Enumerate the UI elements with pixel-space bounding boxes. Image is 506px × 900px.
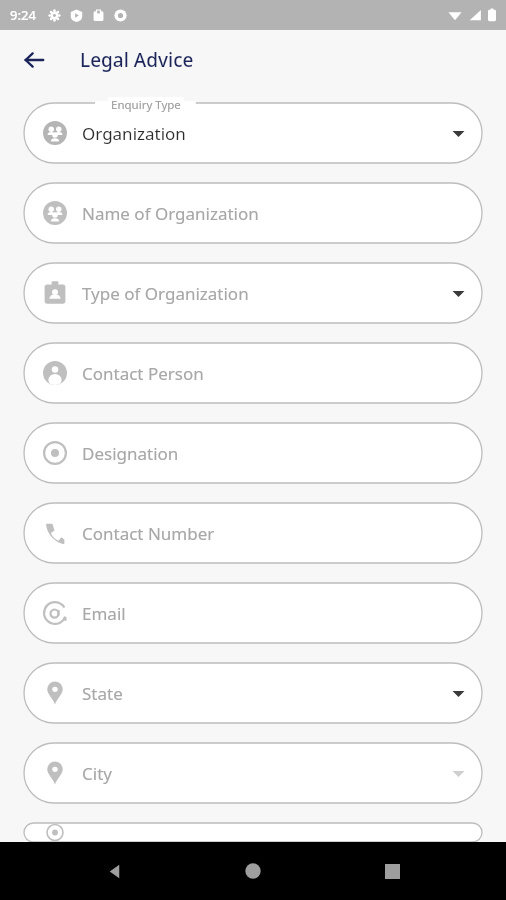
button[interactable]: Contact Person bbox=[24, 343, 482, 403]
button[interactable]: Organization bbox=[24, 103, 482, 163]
staticText: Enquiry Type bbox=[111, 97, 181, 113]
staticText: Name of Organization bbox=[82, 202, 259, 225]
staticText: Contact Person bbox=[82, 362, 204, 385]
button[interactable]: Back bbox=[12, 38, 56, 82]
button[interactable]: Name of Organization bbox=[24, 183, 482, 243]
staticText: Email bbox=[82, 602, 126, 625]
button[interactable]: Email bbox=[24, 583, 482, 643]
button[interactable]: Home bbox=[229, 847, 277, 895]
button[interactable]: Type of Organization bbox=[24, 263, 482, 323]
staticText: Designation bbox=[82, 442, 179, 465]
staticText: 9:24 bbox=[10, 6, 36, 24]
staticText: Type of Organization bbox=[82, 282, 249, 305]
staticText: City bbox=[82, 762, 112, 785]
staticText: Contact Number bbox=[82, 522, 215, 545]
button[interactable]: Recent apps bbox=[368, 847, 416, 895]
staticText: State bbox=[82, 682, 123, 705]
staticText: Organization bbox=[82, 122, 186, 145]
button[interactable] bbox=[24, 823, 482, 842]
button[interactable]: City bbox=[24, 743, 482, 803]
button[interactable]: State bbox=[24, 663, 482, 723]
button[interactable]: Back bbox=[91, 847, 139, 895]
staticText: Legal Advice bbox=[80, 47, 194, 73]
button[interactable]: Contact Number bbox=[24, 503, 482, 563]
button[interactable]: Designation bbox=[24, 423, 482, 483]
